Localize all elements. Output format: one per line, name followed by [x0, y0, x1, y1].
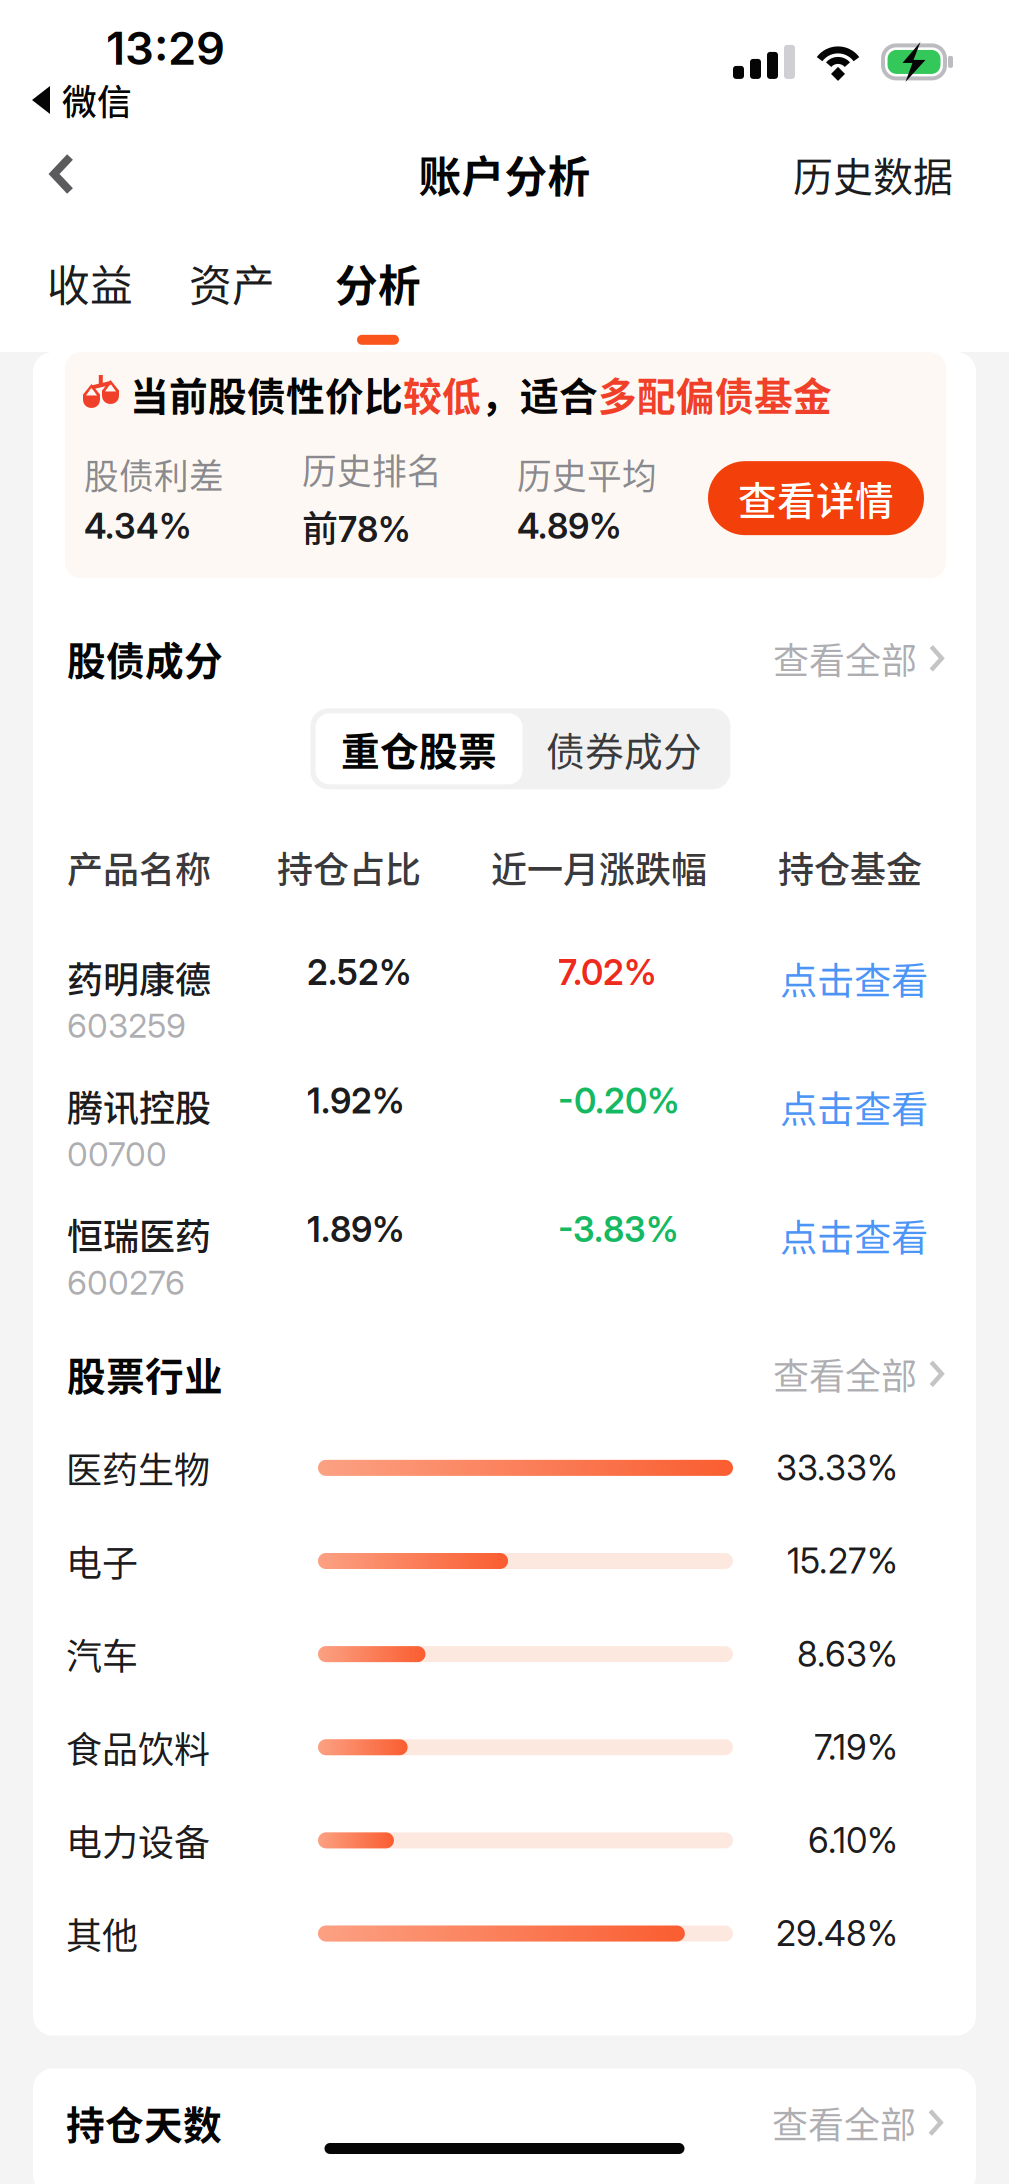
button[interactable]: 返回 — [28, 130, 96, 218]
staticText: ，适合 — [481, 366, 598, 422]
staticText: 33.33% — [776, 1447, 898, 1489]
staticText: 产品名称 — [67, 841, 211, 893]
staticText: 1.89% — [307, 1208, 405, 1250]
staticText: 29.48% — [776, 1912, 898, 1954]
button[interactable]: 点击查看 — [780, 1080, 928, 1134]
staticText: 前 — [302, 500, 338, 552]
staticText: 持仓基金 — [778, 841, 922, 893]
staticText: 微信 — [62, 75, 132, 125]
staticText: 7.02% — [558, 951, 657, 993]
staticText: 恒瑞医药 — [67, 1208, 211, 1260]
staticText: 持仓占比 — [277, 841, 421, 893]
button[interactable]: 重仓股票 — [315, 713, 522, 784]
staticText: 00700 — [67, 1134, 167, 1174]
button[interactable]: 查看详情 — [708, 461, 924, 535]
staticText: 603259 — [67, 1006, 186, 1046]
staticText: 查看全部 — [772, 2096, 916, 2149]
staticText: 持仓天数 — [66, 2095, 222, 2151]
staticText: 电力设备 — [66, 1814, 210, 1866]
staticText: 2.52% — [307, 951, 412, 993]
staticText: 7.19% — [814, 1726, 898, 1768]
staticText: 股债利差 — [84, 449, 224, 499]
staticText: 13:29 — [106, 21, 225, 76]
staticText: 4.34% — [84, 505, 192, 547]
staticText: 股票行业 — [67, 1346, 223, 1402]
staticText: 药明康德 — [67, 951, 211, 1003]
staticText: 资产 — [189, 252, 275, 314]
staticText: 查看全部 — [773, 1348, 917, 1400]
staticText: 腾讯控股 — [67, 1080, 211, 1132]
staticText: 历史数据 — [793, 145, 953, 203]
staticText: 债券成分 — [546, 721, 702, 777]
staticText: 历史排名 — [302, 444, 442, 494]
staticText: 6.10% — [808, 1819, 898, 1861]
button[interactable]: 债券成分 — [522, 713, 725, 784]
button[interactable]: 历史数据 — [767, 130, 979, 218]
staticText: 较低 — [403, 366, 481, 422]
staticText: 78% — [338, 508, 411, 550]
button[interactable]: 查看全部 — [773, 1348, 944, 1400]
staticText: 医药生物 — [66, 1442, 210, 1494]
staticText: 1.92% — [307, 1080, 405, 1122]
staticText: 账户分析 — [418, 143, 590, 205]
staticText: 8.63% — [797, 1633, 898, 1675]
staticText: 其他 — [66, 1907, 138, 1959]
button[interactable]: 点击查看 — [780, 951, 928, 1005]
staticText: 点击查看 — [780, 1208, 928, 1262]
staticText: 重仓股票 — [341, 721, 497, 777]
staticText: 多配偏债基金 — [598, 366, 832, 422]
staticText: 4.89% — [517, 505, 622, 547]
staticText: 近一月涨跌幅 — [491, 841, 707, 893]
staticText: -3.83% — [558, 1208, 679, 1250]
staticText: 收益 — [47, 252, 133, 314]
staticText: 股债成分 — [67, 630, 223, 686]
staticText: 分析 — [335, 252, 421, 314]
staticText: 查看详情 — [738, 470, 894, 526]
button[interactable]: 点击查看 — [780, 1208, 928, 1262]
button[interactable]: 资产 — [169, 252, 295, 345]
staticText: 电子 — [66, 1535, 138, 1587]
button[interactable]: 收益 — [27, 252, 153, 345]
staticText: 15.27% — [787, 1540, 898, 1582]
staticText: 600276 — [67, 1262, 185, 1303]
button[interactable]: 查看全部 — [773, 632, 944, 684]
staticText: 汽车 — [66, 1628, 138, 1680]
button[interactable]: 分析 — [315, 252, 441, 345]
staticText: 点击查看 — [780, 1080, 928, 1134]
staticText: 查看全部 — [773, 632, 917, 684]
staticText: -0.20% — [558, 1080, 680, 1122]
staticText: 点击查看 — [780, 951, 928, 1005]
staticText: 食品饮料 — [66, 1721, 210, 1773]
staticText: 当前股债性价比 — [130, 366, 403, 422]
staticText: 历史平均 — [517, 449, 657, 499]
button[interactable]: 查看全部 — [772, 2096, 943, 2149]
